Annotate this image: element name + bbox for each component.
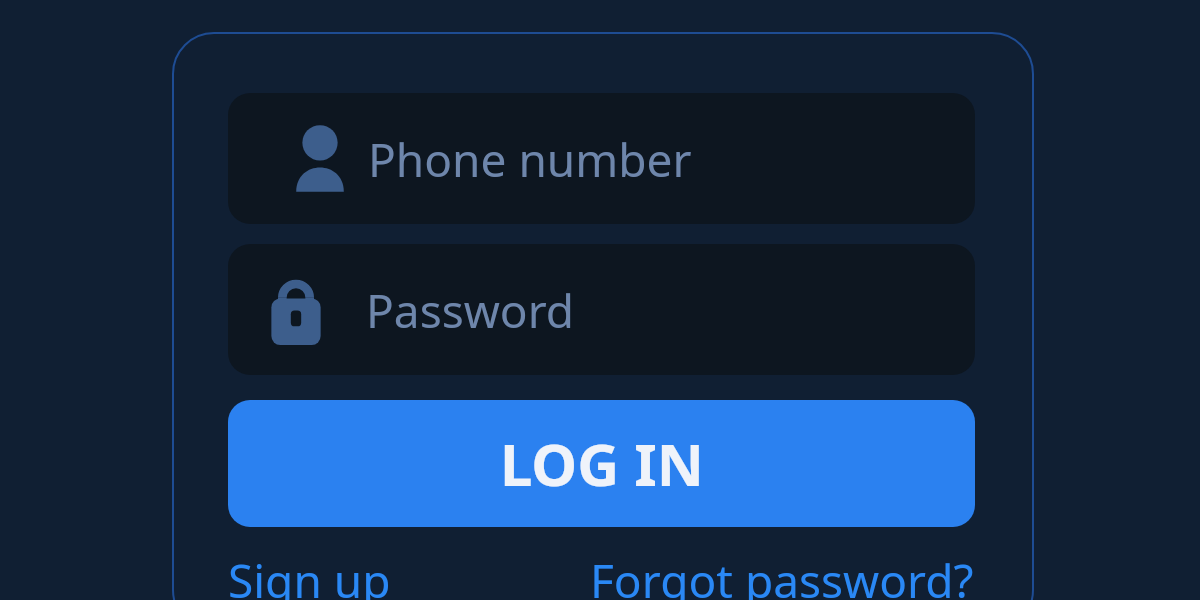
button[interactable]: Forgot password? (590, 549, 980, 600)
button[interactable]: Password (228, 244, 975, 375)
staticText: Sign up (228, 549, 391, 600)
button[interactable]: Phone number (228, 93, 975, 224)
button[interactable]: LOG IN (228, 400, 975, 527)
staticText: LOG IN (500, 424, 704, 503)
button[interactable]: Sign up (228, 549, 468, 600)
staticText: Phone number (368, 128, 692, 191)
staticText: Forgot password? (590, 549, 974, 600)
staticText: Password (366, 279, 575, 342)
